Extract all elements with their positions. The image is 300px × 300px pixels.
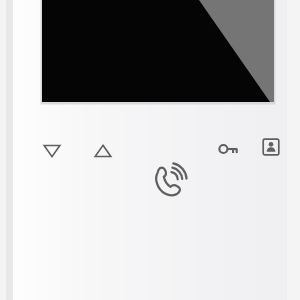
button[interactable]: Down [38, 136, 66, 164]
button[interactable]: Up [89, 138, 117, 166]
button[interactable]: Contacts [258, 134, 284, 160]
button[interactable]: Talk [152, 162, 188, 198]
button[interactable]: Unlock door [215, 135, 243, 163]
